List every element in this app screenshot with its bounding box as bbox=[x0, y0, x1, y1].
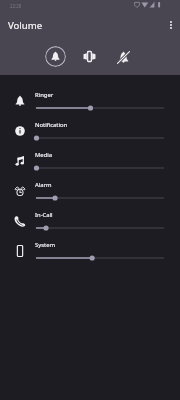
button[interactable]: Alarm bbox=[0, 179, 180, 209]
staticText: 22:28 bbox=[10, 3, 22, 9]
button[interactable]: Ringer bbox=[0, 89, 180, 119]
button[interactable]: Vibrate mode bbox=[79, 46, 100, 67]
button[interactable]: In-Call bbox=[0, 209, 180, 239]
staticText: In-Call bbox=[35, 211, 53, 219]
staticText: Volume bbox=[8, 19, 43, 32]
staticText: Notification bbox=[35, 121, 68, 129]
staticText: Ringer bbox=[35, 91, 54, 99]
button[interactable]: Ring mode bbox=[45, 46, 66, 67]
staticText: Media bbox=[35, 151, 53, 159]
button[interactable]: Media bbox=[0, 149, 180, 179]
staticText: System bbox=[35, 241, 56, 249]
button[interactable]: Notification bbox=[0, 119, 180, 149]
button[interactable]: More options bbox=[163, 17, 178, 32]
staticText: Alarm bbox=[35, 181, 52, 189]
button[interactable]: System bbox=[0, 239, 180, 269]
button[interactable]: Silent mode bbox=[113, 47, 134, 68]
